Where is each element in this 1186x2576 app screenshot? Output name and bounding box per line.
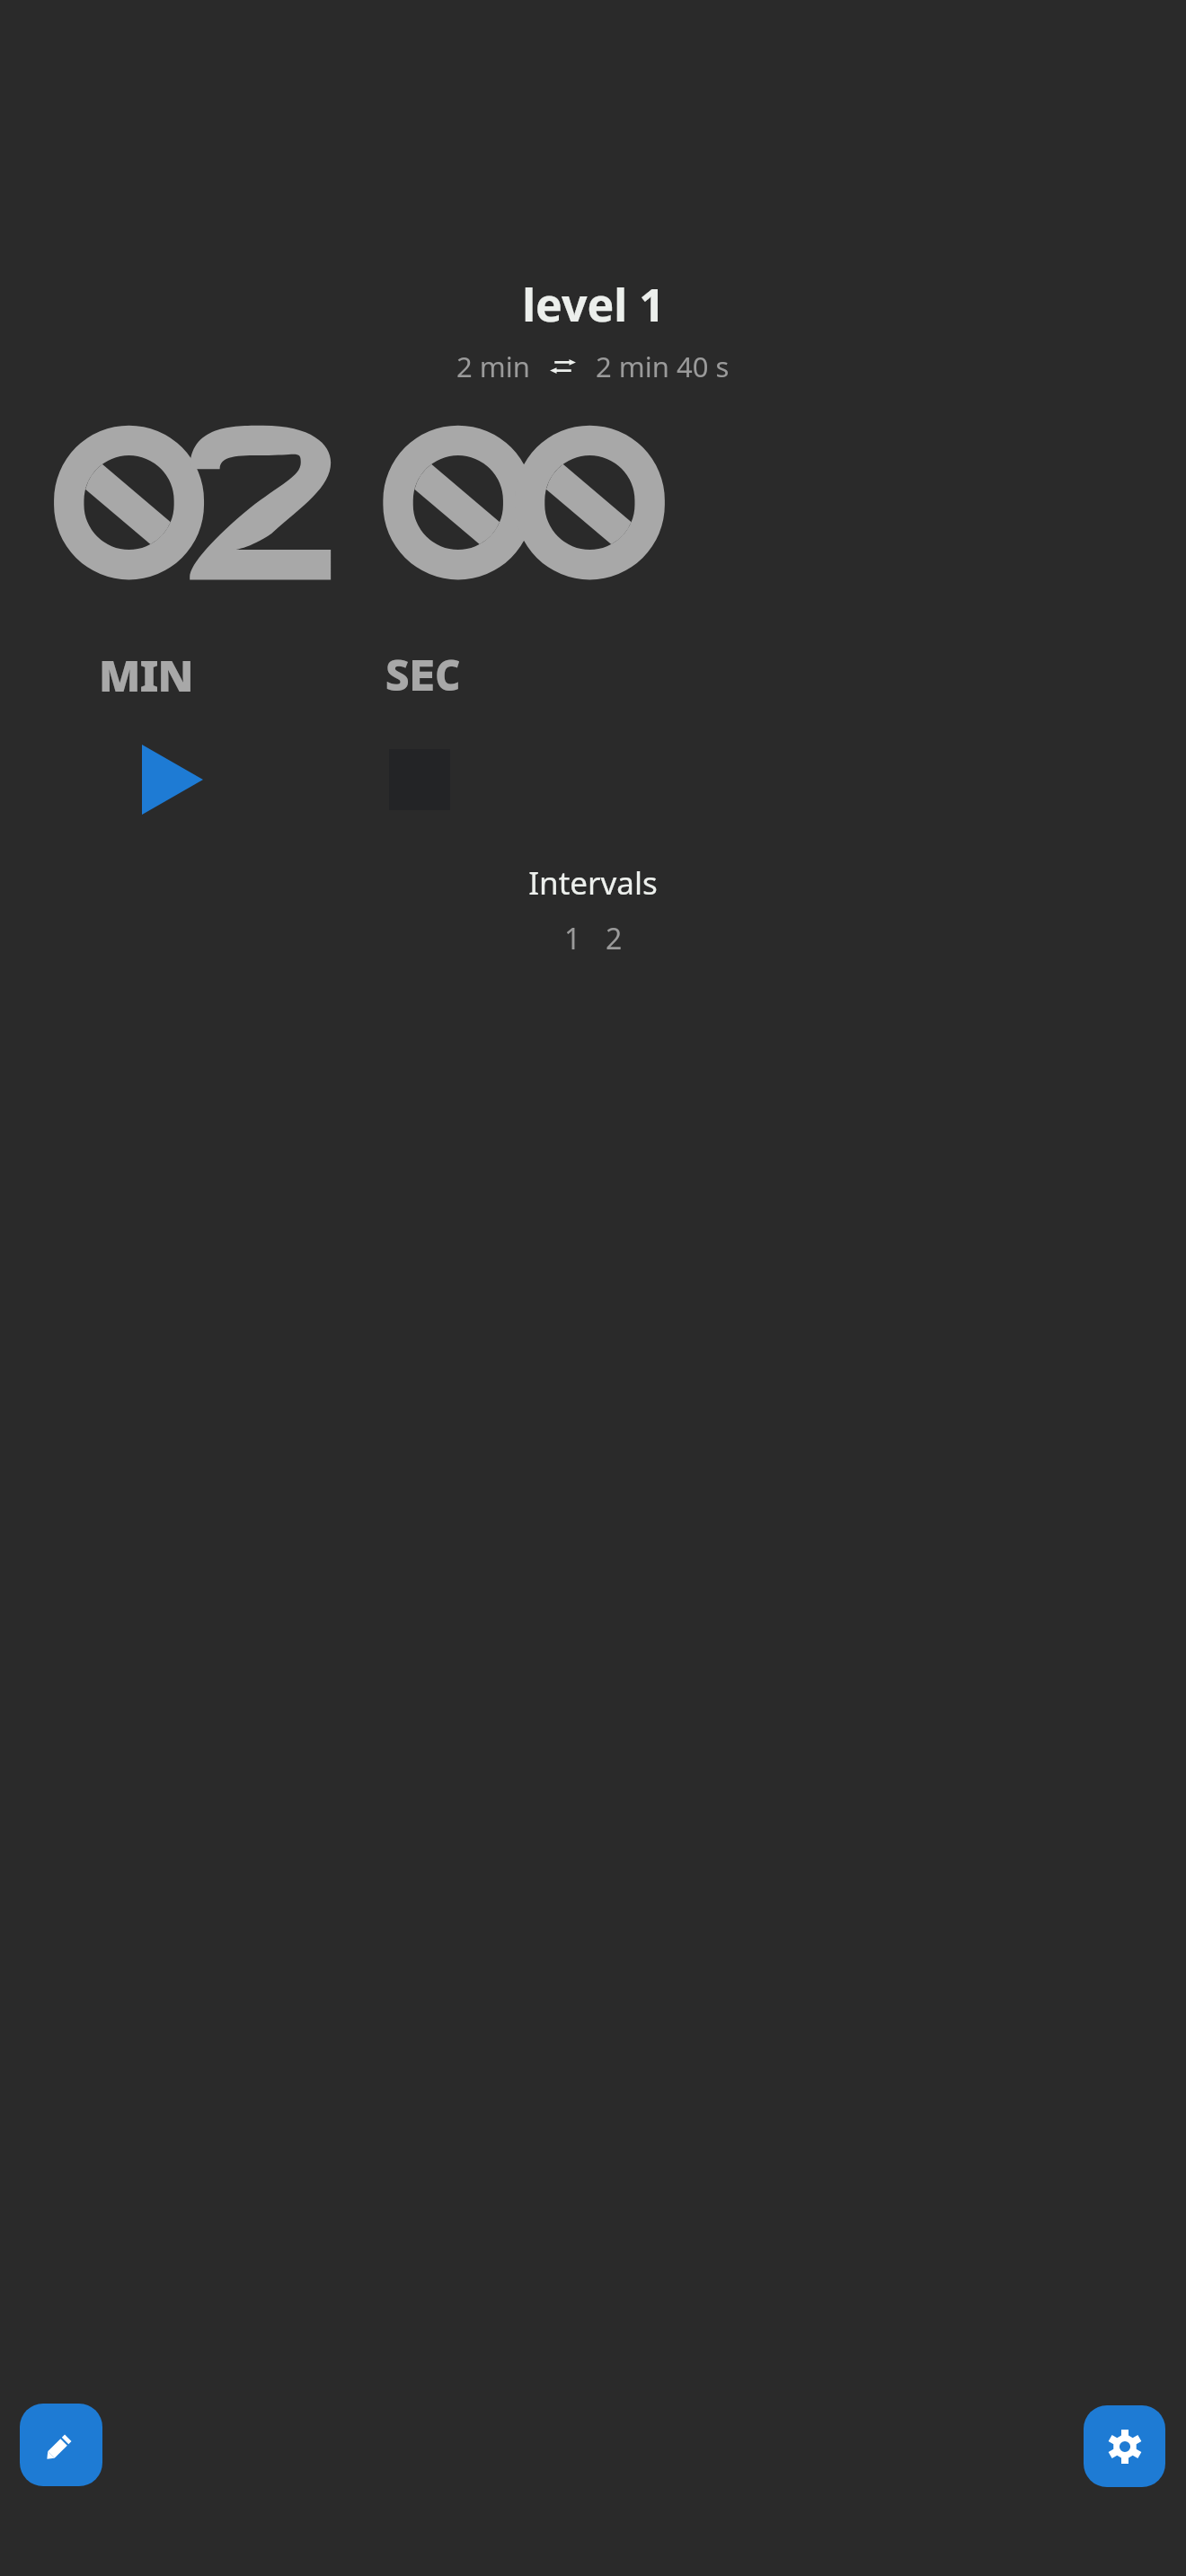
button[interactable]: Play — [142, 745, 203, 815]
button[interactable]: 2 min — [456, 348, 730, 385]
staticText: 2 min 40 s — [596, 348, 730, 385]
button[interactable]: Edit — [20, 2404, 102, 2486]
button[interactable] — [0, 423, 1186, 583]
button[interactable]: 1 — [564, 919, 623, 958]
staticText: SEC — [385, 646, 461, 693]
staticText: level 1 — [522, 274, 665, 335]
staticText: 2 min — [456, 348, 530, 385]
staticText: 1 — [564, 919, 581, 958]
other: Swap intervals — [550, 357, 576, 375]
staticText: 2 — [606, 919, 623, 958]
staticText: MIN — [99, 646, 193, 693]
button[interactable]: Settings — [1084, 2405, 1165, 2487]
button[interactable]: Intervals — [528, 861, 658, 904]
